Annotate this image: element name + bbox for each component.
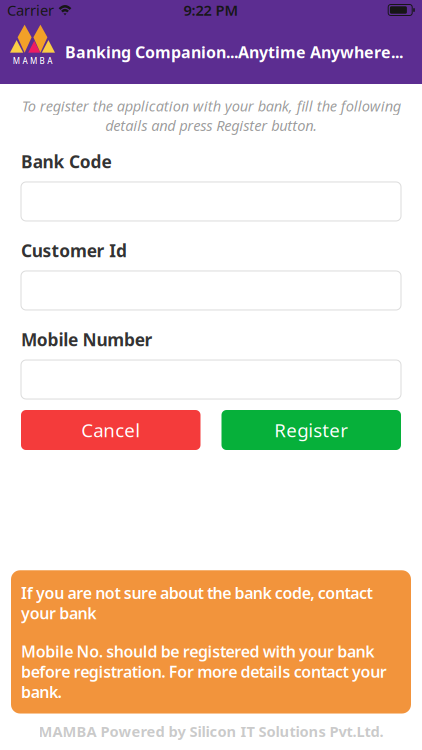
- button[interactable]: Cancel: [21, 410, 200, 450]
- staticText: Carrier: [7, 0, 54, 20]
- staticText: Mobile No. should be registered with you…: [21, 641, 387, 702]
- staticText: Mobile Number: [21, 328, 153, 351]
- staticText: Bank Code: [21, 150, 111, 173]
- staticText: MAMBA Powered by Silicon IT Solutions Pv…: [38, 721, 383, 741]
- staticText: If you are not sure about the bank code,…: [21, 582, 373, 624]
- staticText: Banking Companion...Anytime Anywhere...: [65, 41, 403, 63]
- staticText: Customer Id: [21, 239, 127, 262]
- button[interactable]: Register: [221, 410, 401, 450]
- staticText: To register the application with your ba…: [21, 96, 400, 135]
- staticText: Register: [274, 418, 348, 442]
- staticText: Cancel: [81, 418, 140, 442]
- staticText: 9:22 PM: [183, 0, 238, 20]
- staticText: MAMBA: [13, 56, 52, 66]
